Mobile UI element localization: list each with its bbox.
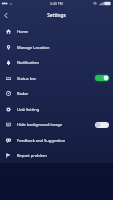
button[interactable]: Unit Setting [0, 101, 113, 117]
staticText: Unit Setting [17, 107, 40, 112]
staticText: Settings [47, 12, 66, 19]
button[interactable]: Radar [0, 86, 113, 101]
staticText: Status bar [17, 76, 37, 81]
button[interactable]: Status bar [0, 70, 113, 86]
staticText: Radar [17, 91, 29, 96]
staticText: Home [17, 29, 29, 34]
staticText: Manage Location [17, 45, 50, 50]
button[interactable]: Notification [0, 55, 113, 70]
staticText: 6:40 PM [50, 1, 63, 6]
button[interactable]: Hide background image toggle [95, 122, 109, 128]
button[interactable]: Status bar toggle [95, 75, 109, 81]
button[interactable]: Home [0, 24, 113, 39]
button[interactable]: Back [0, 7, 13, 24]
staticText: Hide background image [17, 122, 63, 127]
staticText: Feedback and Suggestion [17, 138, 66, 143]
staticText: Report problem [17, 153, 47, 158]
button[interactable]: Report problem [0, 148, 113, 163]
staticText: Notification [17, 60, 39, 65]
button[interactable]: Feedback and Suggestion [0, 132, 113, 148]
button[interactable]: Manage Location [0, 39, 113, 55]
button[interactable]: Hide background image [0, 117, 113, 132]
